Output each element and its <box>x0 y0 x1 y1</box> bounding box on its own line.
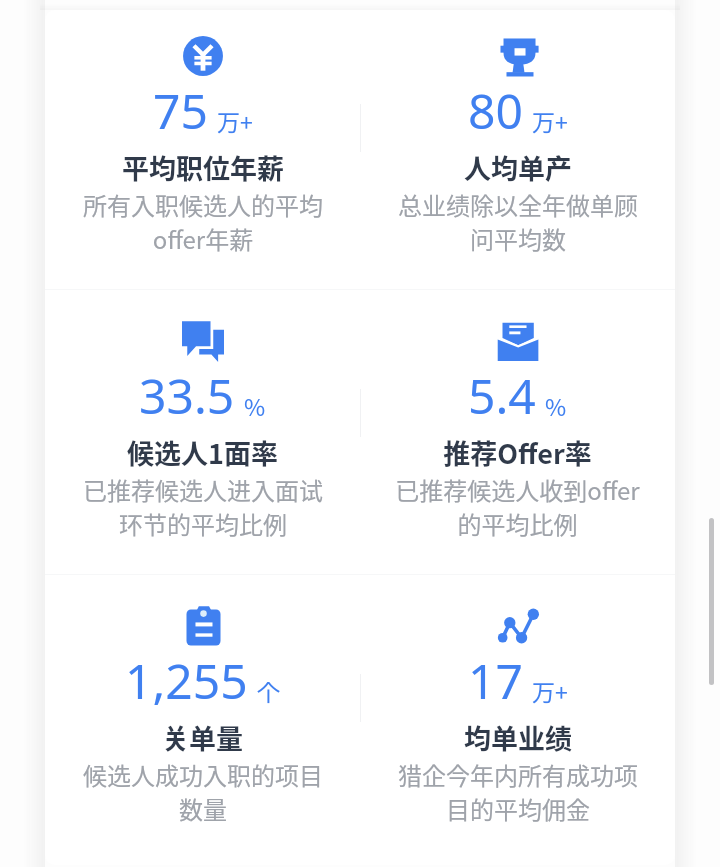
staticText: 个 <box>257 674 280 707</box>
staticText: 17 <box>468 648 523 713</box>
staticText: 均单业绩 <box>464 718 572 757</box>
staticText: 75 <box>153 78 208 143</box>
staticText: 80 <box>468 78 523 143</box>
staticText: 候选人成功入职的项目 数量 <box>83 757 323 826</box>
staticText: 猎企今年内所有成功项 目的平均佣金 <box>398 757 638 826</box>
other: 关单量 <box>182 605 224 647</box>
other: 平均职位年薪 <box>182 35 224 77</box>
staticText: 万+ <box>217 104 253 137</box>
staticText: 5.4 <box>468 363 536 428</box>
staticText: 万+ <box>532 104 568 137</box>
button[interactable]: 推荐Offer率 <box>360 295 675 580</box>
other: 推荐Offer率 <box>497 320 539 362</box>
staticText: 已推荐候选人收到offer 的平均比例 <box>395 472 640 541</box>
staticText: 人均单产 <box>464 148 572 187</box>
staticText: 平均职位年薪 <box>122 148 284 187</box>
staticText: % <box>545 389 567 422</box>
staticText: 万+ <box>532 674 568 707</box>
staticText: 总业绩除以全年做单顾 问平均数 <box>398 187 638 256</box>
staticText: 推荐Offer率 <box>443 433 592 472</box>
staticText: 所有入职候选人的平均 offer年薪 <box>83 187 323 256</box>
other: 候选人1面率 <box>182 320 224 362</box>
staticText: 已推荐候选人进入面试 环节的平均比例 <box>83 472 323 541</box>
button[interactable]: 候选人1面率 <box>45 295 360 580</box>
other: 均单业绩 <box>497 605 539 647</box>
staticText: 关单量 <box>162 718 243 757</box>
staticText: 33.5 <box>139 363 235 428</box>
staticText: 候选人1面率 <box>127 433 278 472</box>
staticText: 1,255 <box>125 648 248 713</box>
staticText: % <box>244 389 266 422</box>
button[interactable]: 平均职位年薪 <box>45 10 360 295</box>
button[interactable]: 关单量 <box>45 580 360 865</box>
button[interactable]: 均单业绩 <box>360 580 675 865</box>
button[interactable]: 人均单产 <box>360 10 675 295</box>
other: 人均单产 <box>497 35 539 77</box>
